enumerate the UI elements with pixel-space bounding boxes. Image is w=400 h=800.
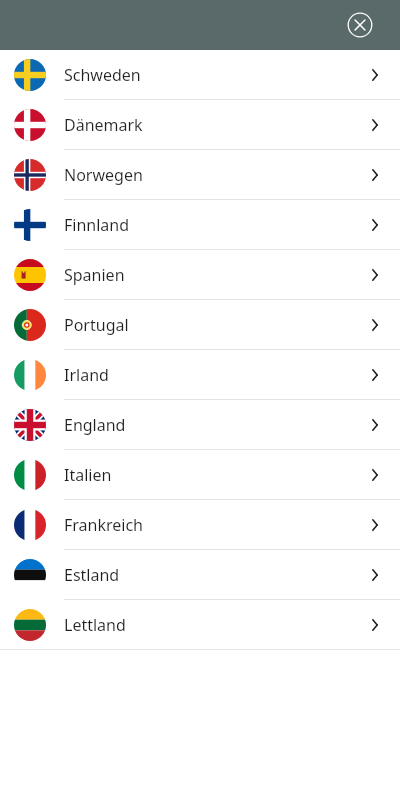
staticText: Dänemark <box>64 114 143 136</box>
button[interactable]: Frankreich <box>0 500 400 549</box>
button[interactable]: Spanien <box>0 250 400 299</box>
button[interactable]: Dänemark <box>0 100 400 149</box>
button[interactable]: Schweden <box>0 50 400 99</box>
staticText: Estland <box>64 564 120 586</box>
button[interactable]: Schließen <box>346 11 374 39</box>
staticText: Lettland <box>64 614 126 636</box>
button[interactable]: Irland <box>0 350 400 399</box>
staticText: Irland <box>64 364 109 386</box>
staticText: Finnland <box>64 214 130 236</box>
button[interactable]: Italien <box>0 450 400 499</box>
staticText: Frankreich <box>64 514 144 536</box>
button[interactable]: Estland <box>0 550 400 599</box>
staticText: Italien <box>64 464 112 486</box>
button[interactable]: Norwegen <box>0 150 400 199</box>
staticText: Spanien <box>64 264 125 286</box>
button[interactable]: England <box>0 400 400 449</box>
staticText: Schweden <box>64 64 141 86</box>
staticText: Portugal <box>64 314 129 336</box>
staticText: England <box>64 414 126 436</box>
button[interactable]: Portugal <box>0 300 400 349</box>
staticText: Norwegen <box>64 164 143 186</box>
button[interactable]: Lettland <box>0 600 400 649</box>
button[interactable]: Finnland <box>0 200 400 249</box>
